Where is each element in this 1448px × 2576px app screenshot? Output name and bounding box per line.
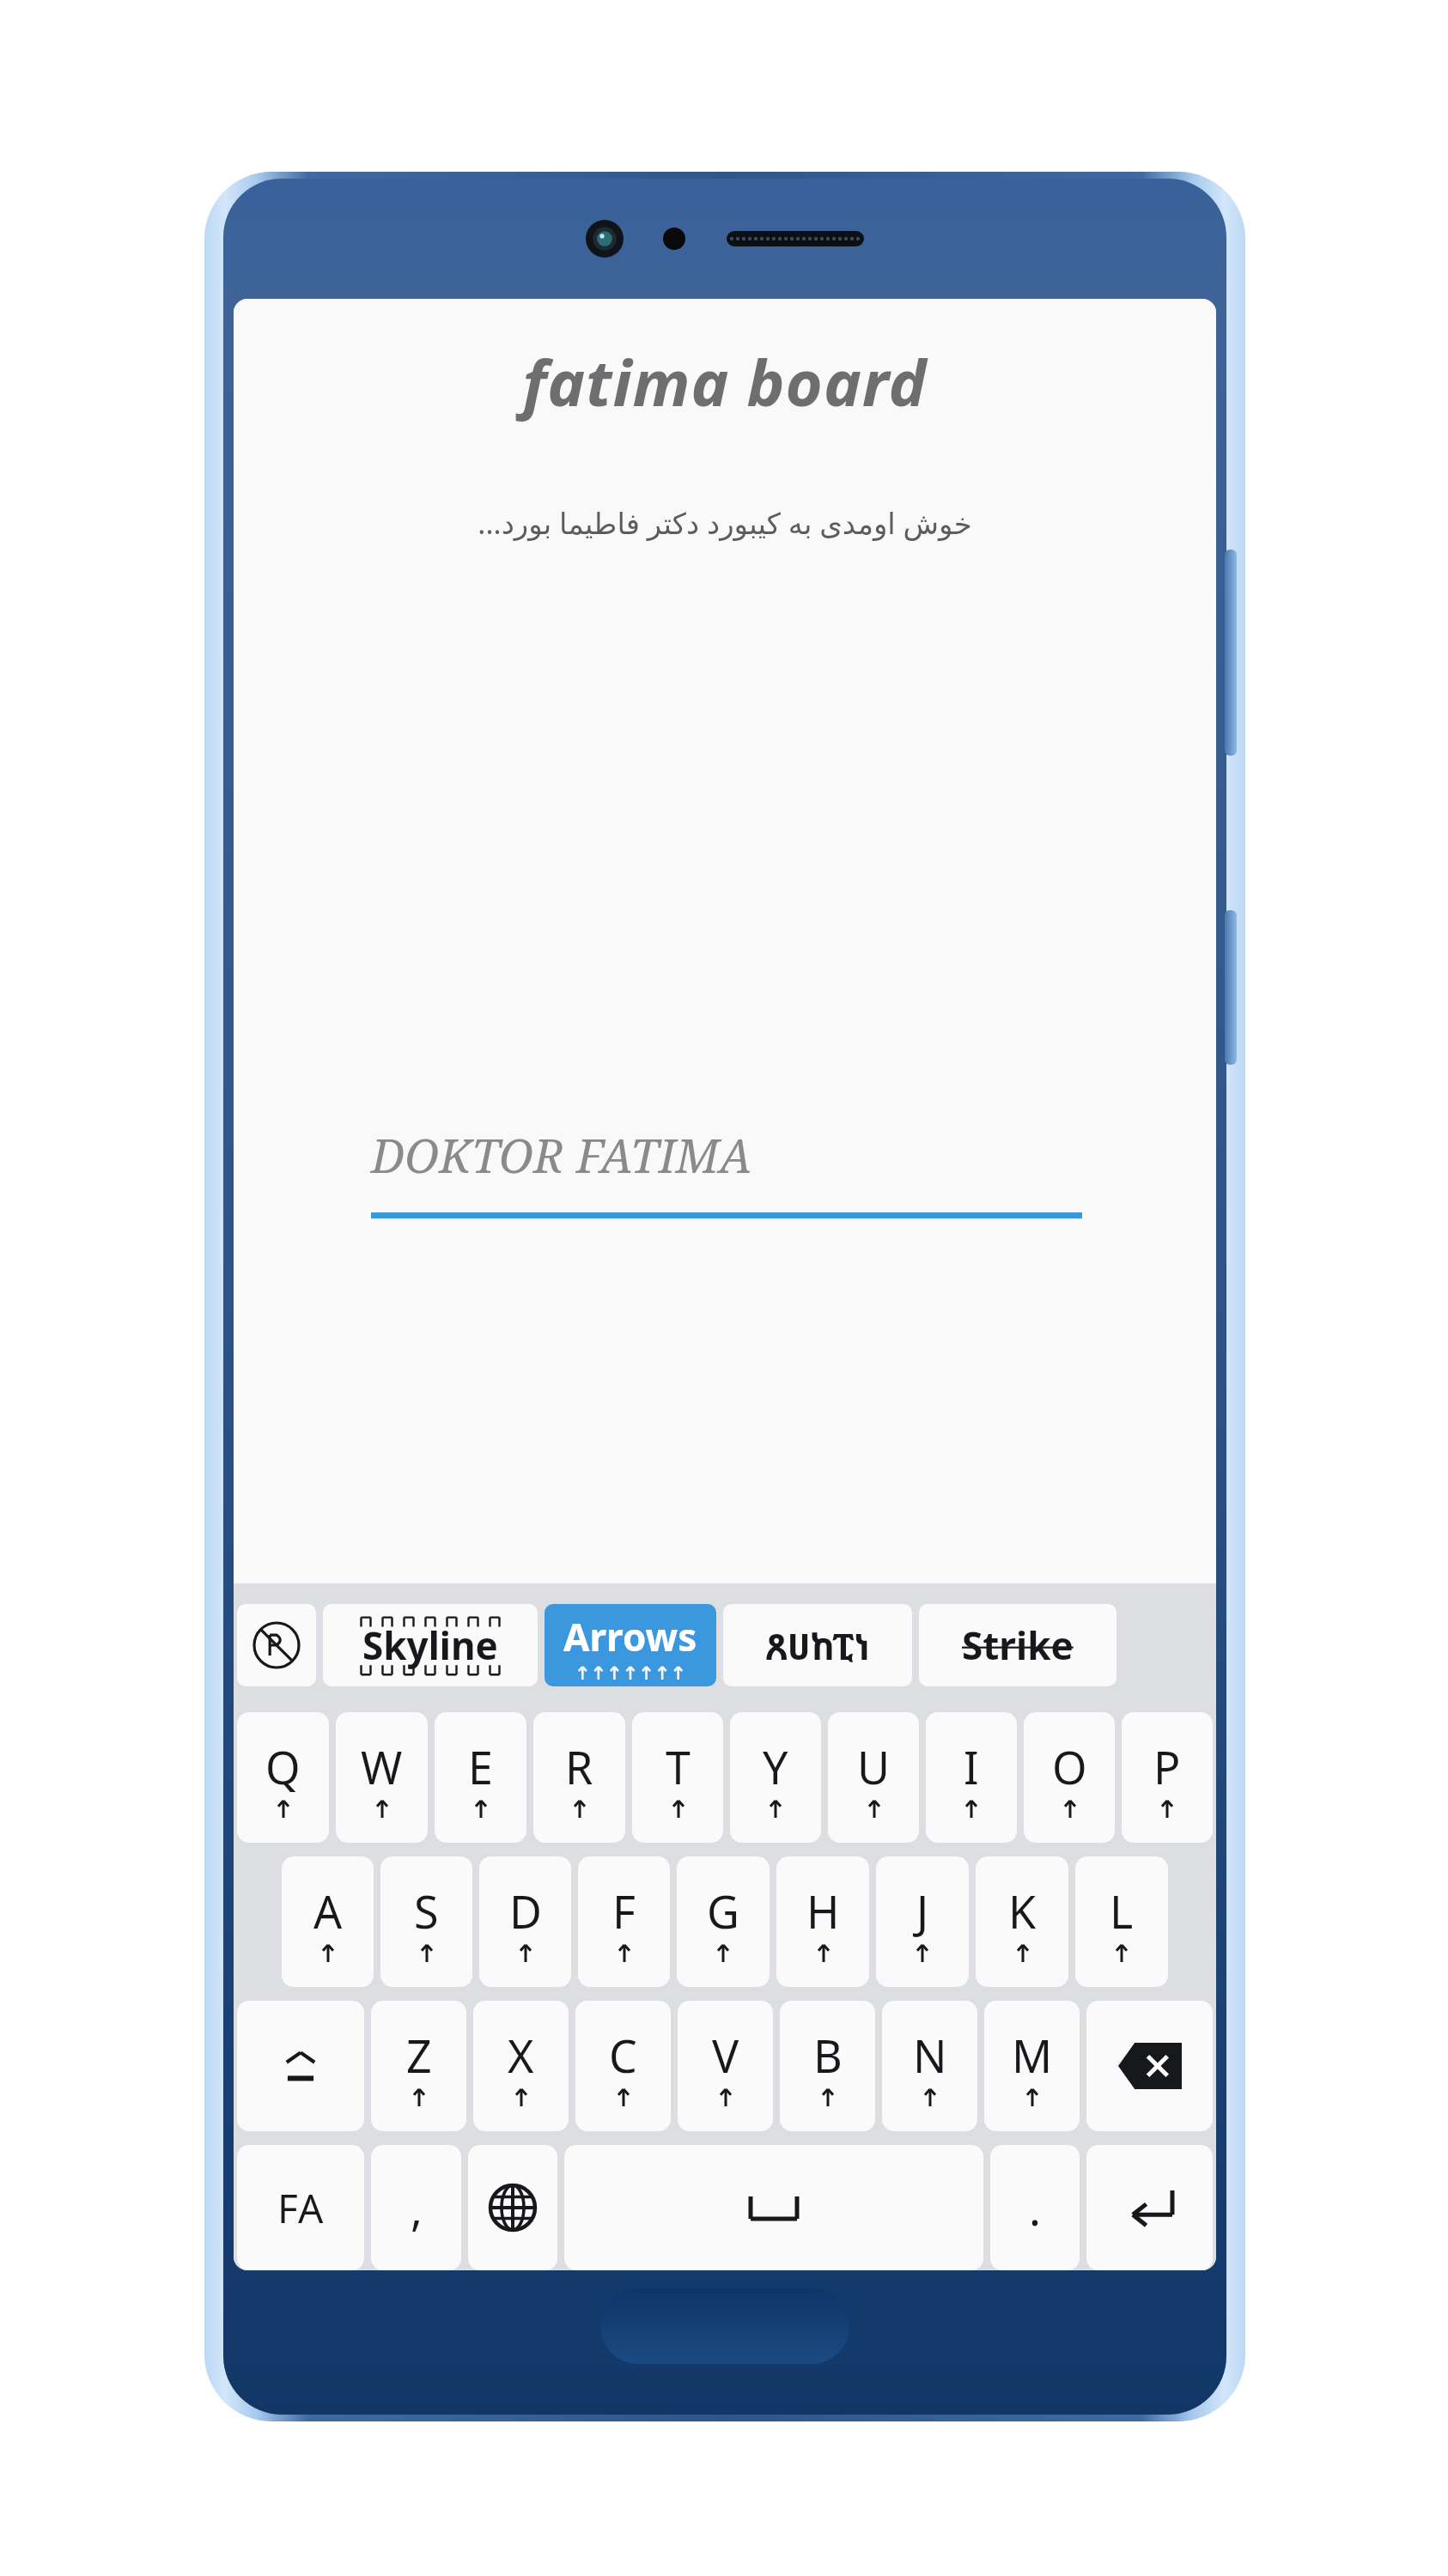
button[interactable]: Z (371, 2001, 466, 2131)
button[interactable]: N (882, 2001, 977, 2131)
button[interactable]: H (776, 1856, 869, 1987)
staticText: V (712, 2025, 739, 2086)
staticText: DOKTOR FATIMA (371, 1123, 752, 1187)
other: Home (596, 2284, 854, 2368)
staticText: R (565, 1736, 593, 1797)
button[interactable]: Arrows (545, 1604, 716, 1686)
button[interactable]: I (926, 1712, 1017, 1843)
button[interactable]: Y (730, 1712, 821, 1843)
staticText: L (1110, 1880, 1134, 1941)
staticText: M (1012, 2025, 1053, 2086)
button[interactable]: K (976, 1856, 1068, 1987)
button[interactable]: Backspace (1086, 2001, 1213, 2131)
staticText: W (361, 1736, 403, 1797)
staticText: A (313, 1880, 343, 1941)
staticText: U (857, 1736, 891, 1797)
staticText: P (1153, 1736, 1181, 1797)
button[interactable]: F (578, 1856, 670, 1987)
button[interactable]: E (435, 1712, 526, 1843)
button[interactable]: S (380, 1856, 472, 1987)
button[interactable]: Shift (237, 2001, 364, 2131)
button[interactable]: Switch language (468, 2145, 557, 2270)
staticText: N (913, 2025, 947, 2086)
staticText: , (411, 2178, 423, 2239)
button[interactable]: B (780, 2001, 875, 2131)
staticText: Q (265, 1736, 301, 1797)
button[interactable]: X (473, 2001, 569, 2131)
staticText: . (1029, 2178, 1041, 2239)
staticText: Z (406, 2025, 432, 2086)
staticText: K (1008, 1880, 1037, 1941)
button[interactable]: Period (990, 2145, 1080, 2270)
button[interactable]: O (1024, 1712, 1115, 1843)
staticText: J (916, 1880, 929, 1941)
staticText: H (806, 1880, 840, 1941)
button[interactable]: C (575, 2001, 671, 2131)
button[interactable]: D (479, 1856, 571, 1987)
button[interactable]: G (677, 1856, 770, 1987)
button[interactable]: Space (564, 2145, 983, 2270)
button[interactable]: R (533, 1712, 625, 1843)
button[interactable]: A (282, 1856, 374, 1987)
button[interactable]: Comma (371, 2145, 461, 2270)
button[interactable]: ጸሀከፒነ (723, 1604, 912, 1686)
button[interactable]: J (876, 1856, 969, 1987)
staticText: Y (763, 1736, 788, 1797)
staticText: D (509, 1880, 542, 1941)
staticText: F (612, 1880, 636, 1941)
button[interactable]: Language FA (237, 2145, 364, 2270)
staticText: O (1052, 1736, 1087, 1797)
button[interactable]: No style (237, 1604, 316, 1686)
button[interactable]: Enter (1086, 2145, 1213, 2270)
button[interactable]: Q (237, 1712, 329, 1843)
button[interactable]: Skyline (323, 1604, 538, 1686)
staticText: ጸሀከፒነ (765, 1621, 871, 1670)
staticText: Strike (962, 1619, 1074, 1671)
button[interactable]: W (336, 1712, 428, 1843)
staticText: خوش اومدی به کیبورد دکتر فاطیما بورد... (265, 503, 1185, 543)
staticText: X (508, 2025, 534, 2086)
staticText: T (666, 1736, 691, 1797)
button[interactable]: U (828, 1712, 919, 1843)
staticText: FA (277, 2181, 325, 2235)
staticText: G (707, 1880, 739, 1941)
staticText: fatima board (234, 338, 1216, 425)
button[interactable]: DOKTOR FATIMA (371, 1123, 1082, 1218)
staticText: S (414, 1880, 439, 1941)
staticText: C (609, 2025, 637, 2086)
button[interactable]: L (1075, 1856, 1168, 1987)
staticText: E (468, 1736, 493, 1797)
button[interactable]: V (678, 2001, 773, 2131)
staticText: Skyline (362, 1619, 498, 1671)
button[interactable]: P (1122, 1712, 1213, 1843)
button[interactable]: Strike (919, 1604, 1116, 1686)
button[interactable]: T (632, 1712, 723, 1843)
staticText: Arrows (563, 1611, 697, 1662)
staticText: I (964, 1736, 979, 1797)
staticText: B (813, 2025, 843, 2086)
button[interactable]: M (984, 2001, 1080, 2131)
